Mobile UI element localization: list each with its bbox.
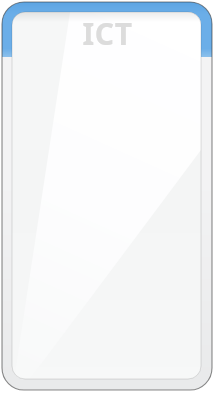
button[interactable]: ICT device [0,0,214,400]
